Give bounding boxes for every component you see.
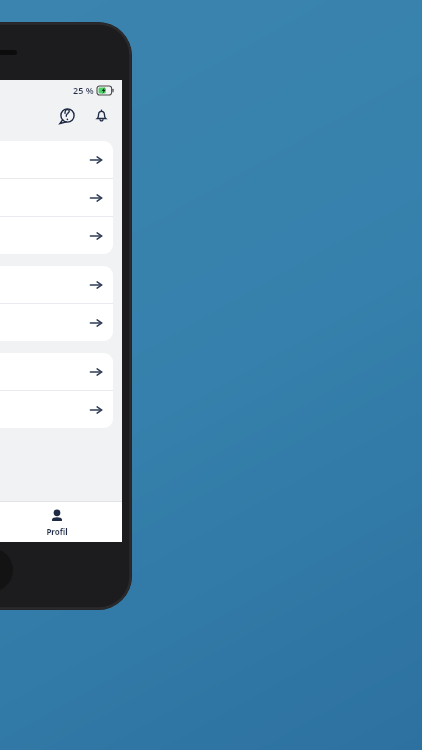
button[interactable]: Bankdaten ändern — [0, 304, 113, 341]
staticText: Profil — [46, 526, 68, 537]
button[interactable]: Meine Verträge — [0, 141, 113, 178]
staticText: 25 % — [73, 84, 94, 96]
button[interactable]: Notifications — [86, 100, 116, 130]
button[interactable]: Help — [52, 100, 82, 130]
button[interactable]: Umzug melden — [0, 266, 113, 303]
button[interactable]: Rechnungen — [0, 179, 113, 216]
button[interactable]: Tarifwechsel — [0, 353, 113, 390]
button[interactable]: Zählerstand — [0, 217, 113, 254]
button[interactable]: Profil — [0, 502, 122, 542]
button[interactable]: Kontakt — [0, 391, 113, 428]
